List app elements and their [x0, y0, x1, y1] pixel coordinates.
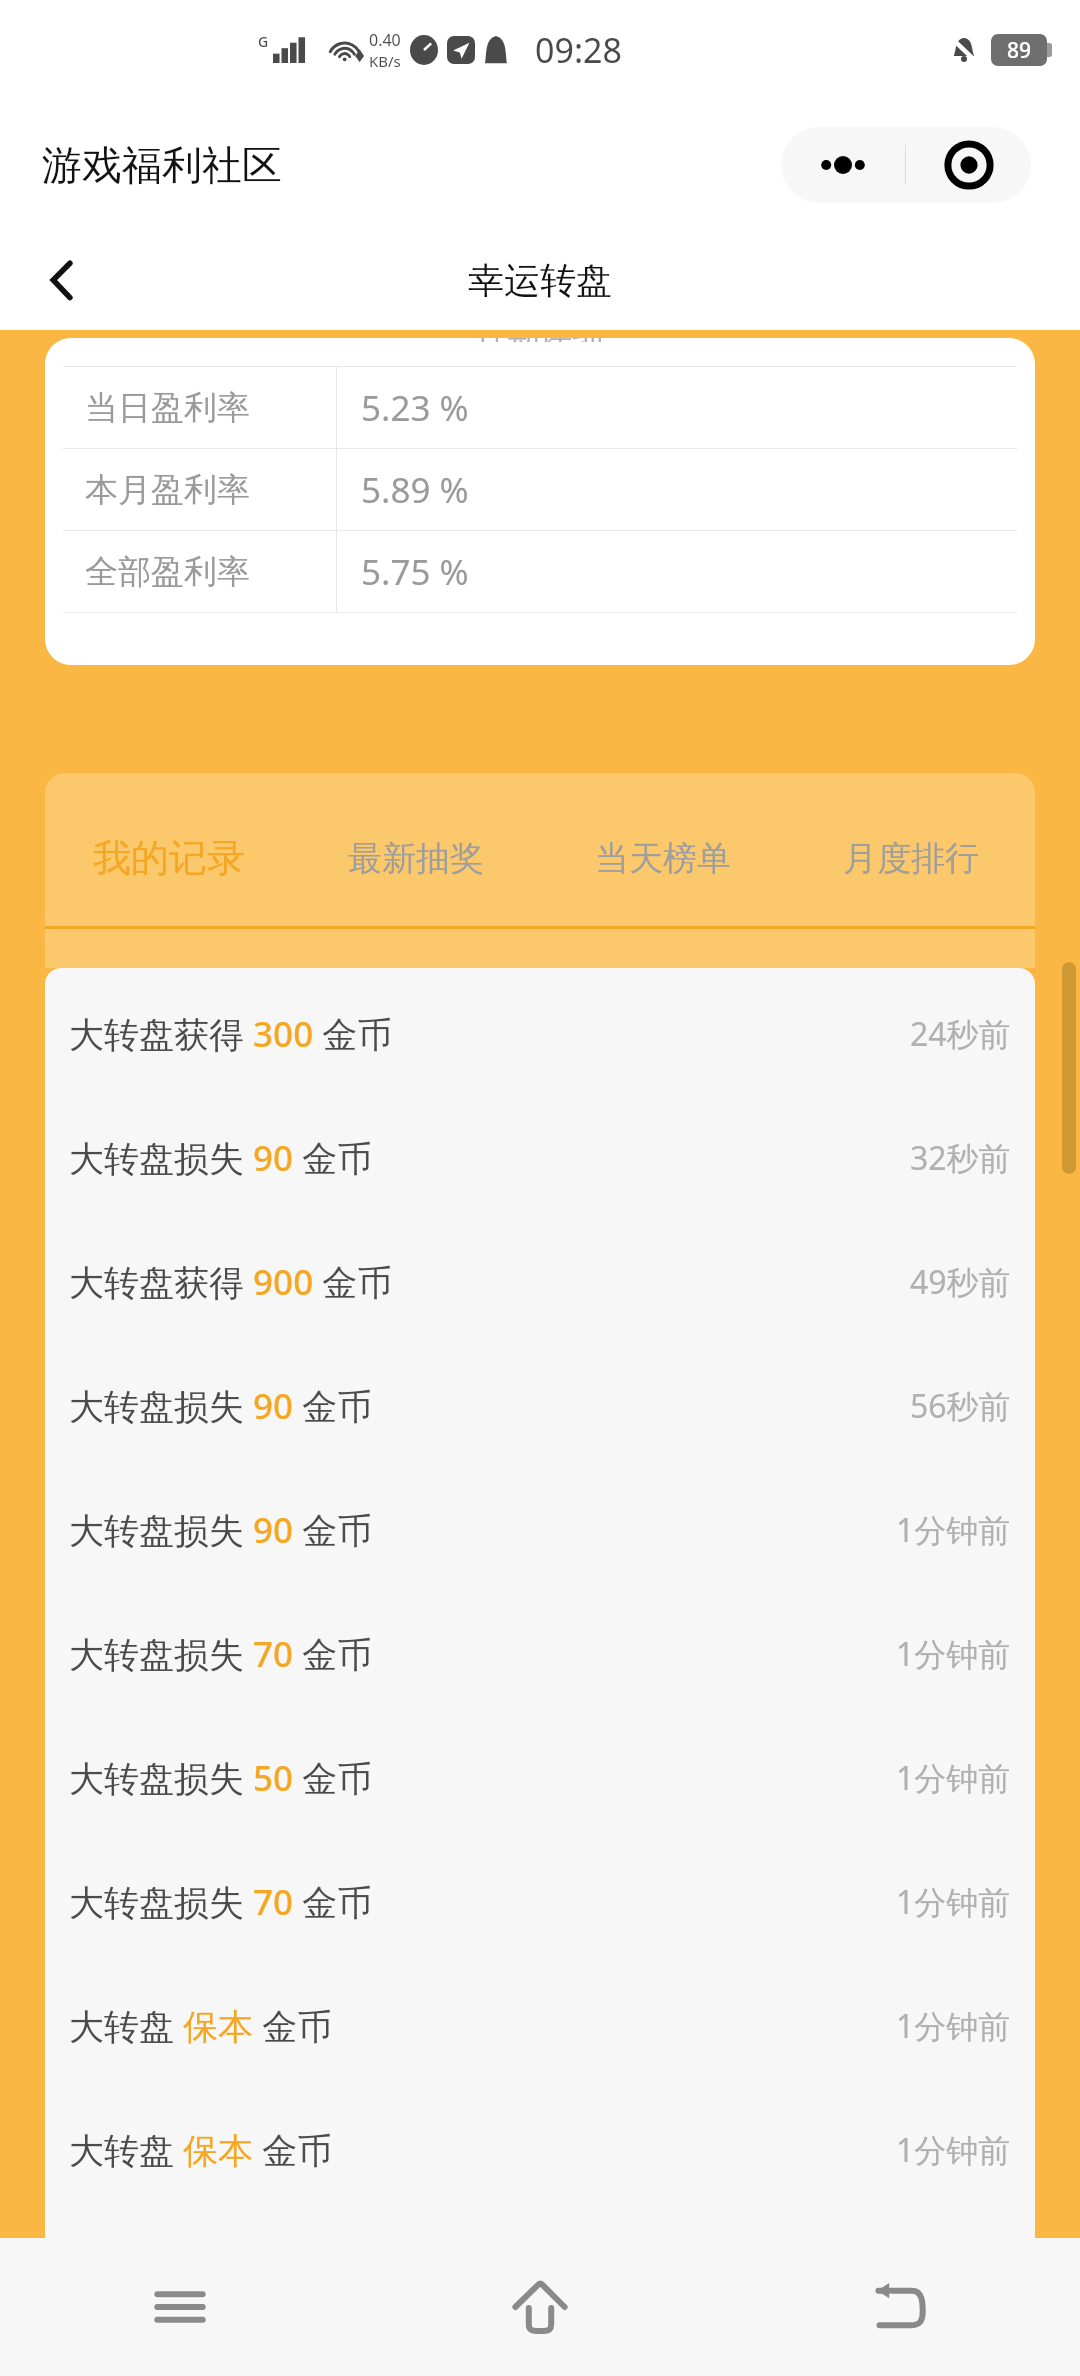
- staticText: 我的记录: [93, 834, 245, 882]
- button[interactable]: Back: [22, 240, 102, 320]
- staticText: 49秒前: [910, 1260, 1011, 1304]
- staticText: 大转盘 保本 金币: [69, 2002, 333, 2050]
- button[interactable]: 大转盘损失 90 金币: [45, 1468, 1035, 1592]
- staticText: 幸运转盘: [468, 258, 612, 303]
- other: More: [781, 127, 905, 203]
- button[interactable]: 大转盘获得 300 金币: [45, 972, 1035, 1096]
- button[interactable]: Recents: [0, 2238, 360, 2376]
- button[interactable]: 大转盘 保本 金币: [45, 1964, 1035, 2088]
- staticText: 5.89 %: [361, 466, 469, 514]
- staticText: 5.75 %: [361, 548, 469, 596]
- staticText: 大转盘损失 90 金币: [69, 1506, 373, 1554]
- staticText: 89: [1007, 36, 1032, 65]
- staticText: 1分钟前: [896, 1880, 1011, 1924]
- staticText: 1分钟前: [896, 2004, 1011, 2048]
- staticText: 最新抽奖: [348, 837, 484, 880]
- staticText: 0.40: [369, 29, 401, 51]
- button[interactable]: 大转盘损失 90 金币: [45, 1344, 1035, 1468]
- button[interactable]: 当天榜单: [539, 815, 787, 901]
- staticText: 月度排行: [843, 837, 979, 880]
- button[interactable]: 大转盘损失 70 金币: [45, 1840, 1035, 1964]
- staticText: 1分钟前: [896, 1508, 1011, 1552]
- staticText: 大转盘损失 70 金币: [69, 1878, 373, 1926]
- button[interactable]: 大转盘 保本 金币: [45, 2088, 1035, 2212]
- staticText: 大转盘损失 50 金币: [69, 1754, 373, 1802]
- staticText: 09:28: [535, 27, 622, 73]
- staticText: 全部盈利率: [85, 551, 250, 593]
- button[interactable]: Back: [720, 2238, 1080, 2376]
- button[interactable]: 月度排行: [787, 815, 1035, 901]
- staticText: 游戏福利社区: [42, 140, 282, 190]
- staticText: 1分钟前: [896, 1632, 1011, 1676]
- button[interactable]: 大转盘损失 90 金币: [45, 1096, 1035, 1220]
- staticText: 32秒前: [910, 1136, 1011, 1180]
- other: Close: [906, 127, 1031, 203]
- staticText: 1分钟前: [896, 2128, 1011, 2172]
- button[interactable]: 大转盘损失 70 金币: [45, 1592, 1035, 1716]
- staticText: 往期详细: [476, 338, 604, 342]
- button[interactable]: 大转盘损失 50 金币: [45, 1716, 1035, 1840]
- staticText: 56秒前: [910, 1384, 1011, 1428]
- staticText: 大转盘损失 90 金币: [69, 1134, 373, 1182]
- button[interactable]: 大转盘获得 900 金币: [45, 1220, 1035, 1344]
- button[interactable]: More: [781, 127, 1031, 203]
- staticText: 大转盘损失 70 金币: [69, 1630, 373, 1678]
- staticText: 1分钟前: [896, 1756, 1011, 1800]
- staticText: KB/s: [369, 51, 401, 71]
- staticText: 5.23 %: [361, 384, 469, 432]
- staticText: 当日盈利率: [85, 387, 250, 429]
- staticText: 大转盘获得 300 金币: [69, 1010, 393, 1058]
- button[interactable]: 我的记录: [45, 815, 292, 901]
- staticText: 本月盈利率: [85, 469, 250, 511]
- staticText: 大转盘获得 900 金币: [69, 1258, 393, 1306]
- button[interactable]: 最新抽奖: [292, 815, 539, 901]
- staticText: 大转盘损失 90 金币: [69, 1382, 373, 1430]
- staticText: G: [258, 32, 269, 51]
- button[interactable]: Home: [360, 2238, 720, 2376]
- staticText: 当天榜单: [595, 837, 731, 880]
- staticText: 大转盘 保本 金币: [69, 2126, 333, 2174]
- staticText: 24秒前: [910, 1012, 1011, 1056]
